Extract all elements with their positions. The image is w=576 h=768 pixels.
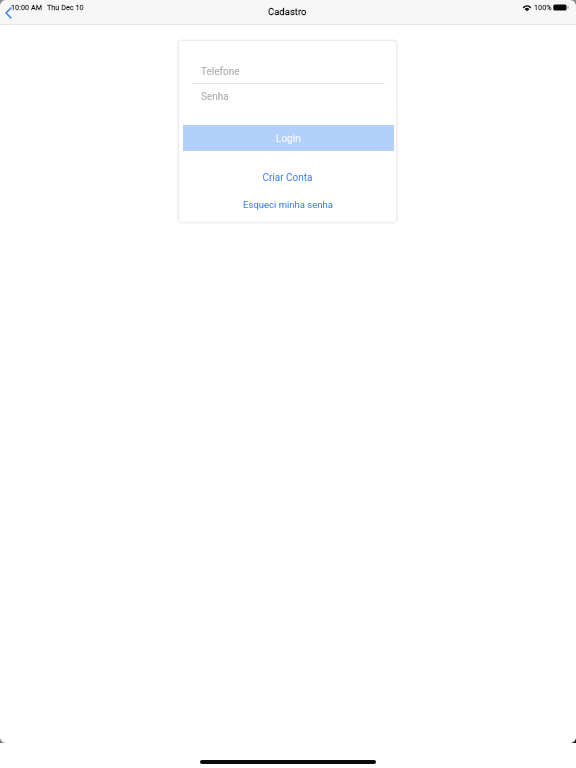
staticText: Criar Conta: [262, 172, 313, 184]
button[interactable]: Esqueci minha senha: [179, 196, 396, 213]
staticText: Telefone: [201, 66, 240, 78]
staticText: 100%: [534, 3, 552, 12]
staticText: Senha: [201, 91, 229, 103]
button[interactable]: Login: [183, 125, 394, 151]
button[interactable]: Telefone: [179, 63, 396, 80]
staticText: 10:00 AM: [11, 3, 43, 12]
button[interactable]: Senha: [179, 88, 396, 105]
staticText: Cadastro: [268, 6, 307, 17]
staticText: Thu Dec 10: [47, 3, 84, 12]
staticText: Login: [276, 133, 301, 145]
staticText: Esqueci minha senha: [243, 199, 333, 210]
button[interactable]: Back: [0, 2, 18, 24]
button[interactable]: Criar Conta: [179, 169, 396, 186]
